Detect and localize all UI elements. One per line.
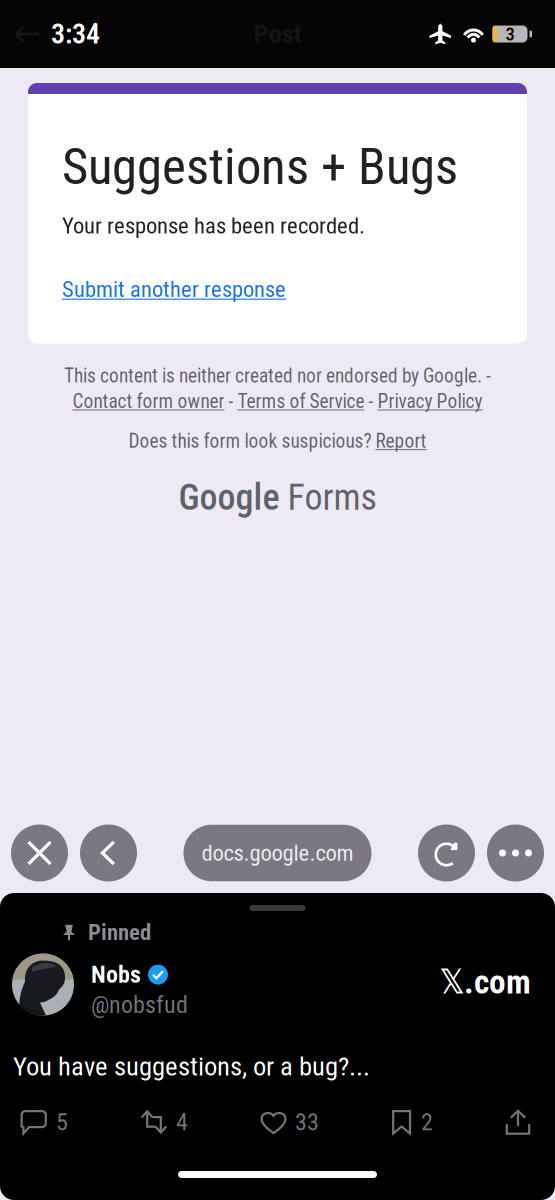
- button[interactable]: More: [487, 824, 544, 881]
- button[interactable]: Report: [375, 430, 426, 452]
- button[interactable]: Contact form owner: [72, 390, 224, 413]
- staticText: Terms of Service: [237, 390, 364, 413]
- button[interactable]: Terms of Service: [237, 390, 364, 413]
- staticText: -: [224, 390, 237, 413]
- staticText: Your response has been recorded.: [62, 212, 365, 239]
- button[interactable]: Share: [505, 1109, 531, 1135]
- staticText: Report: [375, 430, 426, 452]
- button[interactable]: Submit another response: [62, 276, 286, 302]
- staticText: Google: [178, 476, 279, 519]
- staticText: 3: [505, 23, 514, 45]
- button[interactable]: Reload: [418, 824, 475, 881]
- staticText: Submit another response: [62, 276, 286, 302]
- button[interactable]: Back: [80, 824, 137, 881]
- staticText: 2: [421, 1108, 433, 1136]
- staticText: 33: [295, 1108, 319, 1136]
- button[interactable]: docs.google.com: [183, 825, 371, 881]
- staticText: -: [364, 390, 377, 413]
- staticText: Pinned: [88, 919, 151, 946]
- staticText: 5: [56, 1108, 68, 1136]
- staticText: Suggestions + Bugs: [62, 137, 458, 196]
- button[interactable]: Close: [11, 824, 68, 881]
- staticText: Does this form look suspicious?: [128, 430, 375, 452]
- button[interactable]: Privacy Policy: [377, 390, 482, 413]
- staticText: docs.google.com: [201, 840, 353, 866]
- staticText: @nobsfud: [91, 991, 188, 1019]
- staticText: 3:34: [51, 18, 100, 50]
- staticText: Contact form owner: [72, 390, 224, 413]
- staticText: This content is neither created nor endo…: [64, 364, 491, 387]
- staticText: Nobs: [91, 961, 141, 989]
- staticText: 4: [176, 1108, 188, 1136]
- staticText: Forms: [279, 476, 376, 519]
- button[interactable]: Like: [260, 1108, 319, 1136]
- staticText: Privacy Policy: [377, 390, 482, 413]
- staticText: 𝕏.com: [440, 963, 531, 1002]
- button[interactable]: Bookmark: [391, 1108, 433, 1136]
- staticText: You have suggestions, or a bug?...: [13, 1051, 370, 1082]
- button[interactable]: Repost: [140, 1108, 188, 1136]
- staticText: Post: [253, 18, 301, 50]
- button[interactable]: Reply: [20, 1108, 68, 1136]
